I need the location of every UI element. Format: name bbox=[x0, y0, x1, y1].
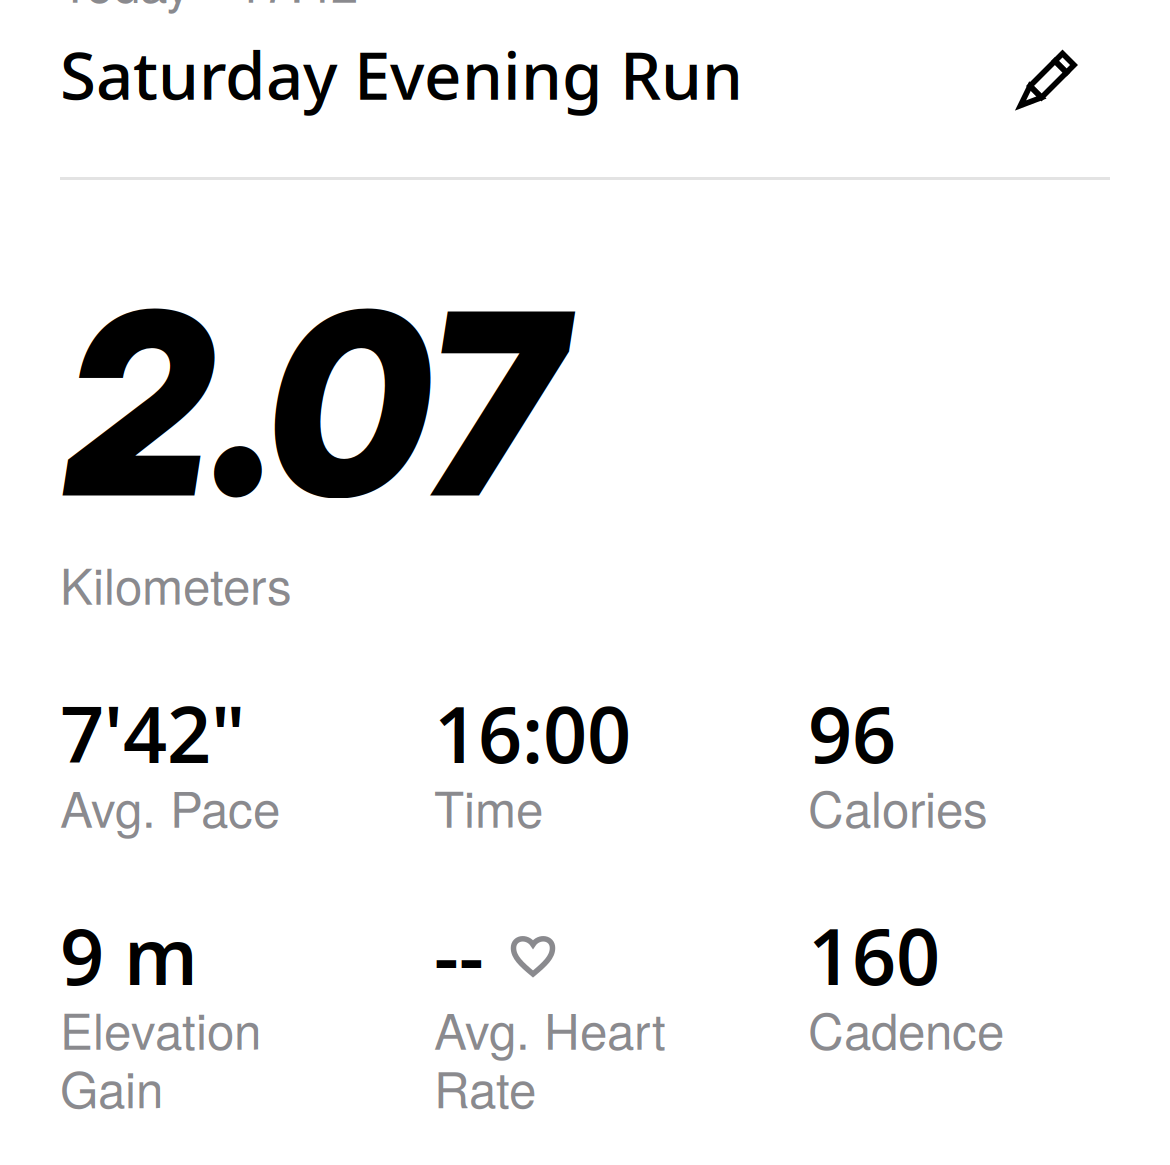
button[interactable]: Edit workout name bbox=[992, 22, 1102, 132]
staticText: Calories bbox=[808, 771, 988, 842]
staticText: Avg. Pace bbox=[60, 771, 280, 842]
staticText: Today • 17:42 bbox=[60, 0, 358, 17]
staticText: 96 bbox=[808, 680, 896, 786]
staticText: Saturday Evening Run bbox=[60, 30, 743, 119]
staticText: Elevation Gain bbox=[60, 993, 261, 1122]
staticText: 2.07 bbox=[64, 250, 598, 556]
staticText: Kilometers bbox=[60, 548, 292, 619]
staticText: 9 m bbox=[60, 902, 198, 1008]
staticText: -- bbox=[434, 902, 484, 1008]
staticText: Cadence bbox=[808, 993, 1004, 1064]
staticText: 7'42" bbox=[60, 680, 245, 786]
staticText: 16:00 bbox=[434, 680, 631, 786]
staticText: 160 bbox=[808, 902, 940, 1008]
staticText: Time bbox=[434, 771, 543, 842]
staticText: Avg. Heart Rate bbox=[434, 993, 666, 1122]
